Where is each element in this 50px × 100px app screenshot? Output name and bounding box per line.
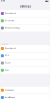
button[interactable]: System apps <box>0 87 50 94</box>
button[interactable]: Sound <box>0 59 50 66</box>
staticText: Wi-Fi <box>5 55 9 57</box>
staticText: Sound <box>5 62 10 64</box>
staticText: Screen time <box>5 20 14 22</box>
staticText: ▲ ⬤ ▮ <box>45 0 49 2</box>
button[interactable]: Do not disturb <box>0 10 50 17</box>
button[interactable]: Notification settings <box>0 24 50 31</box>
button[interactable]: Wi-Fi <box>0 52 50 59</box>
button[interactable]: Installed apps <box>0 94 50 100</box>
staticText: 9:41 <box>1 0 5 2</box>
button[interactable]: Apps <box>0 67 50 74</box>
staticText: Settings <box>19 5 30 8</box>
staticText: Do not disturb <box>5 48 16 49</box>
button[interactable]: Screen time <box>0 17 50 24</box>
staticText: Notification settings <box>5 27 20 29</box>
staticText: System apps <box>5 89 14 91</box>
staticText: GENERAL <box>1 43 8 45</box>
button[interactable]: Do not disturb <box>0 45 50 52</box>
staticText: Installed apps <box>5 97 15 98</box>
staticText: Apps <box>5 69 9 71</box>
staticText: Do not disturb <box>5 13 16 14</box>
